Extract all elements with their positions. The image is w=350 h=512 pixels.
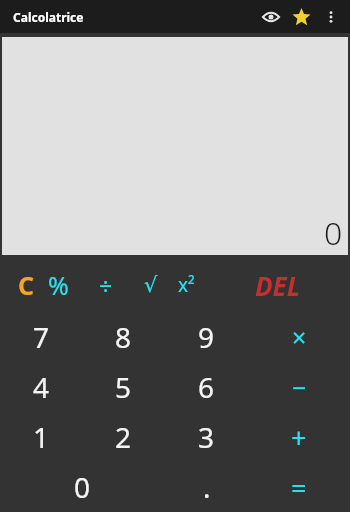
button[interactable]: x² xyxy=(166,259,206,311)
staticText: 9 xyxy=(198,318,215,356)
button[interactable]: . xyxy=(165,462,248,512)
staticText: 6 xyxy=(198,368,215,406)
staticText: × xyxy=(292,320,307,354)
button[interactable]: − xyxy=(248,362,350,412)
staticText: x² xyxy=(178,272,195,298)
button[interactable]: DEL xyxy=(238,259,318,311)
staticText: = xyxy=(291,469,307,506)
staticText: 3 xyxy=(198,418,215,456)
staticText: 4 xyxy=(33,368,50,406)
button[interactable]: √ xyxy=(133,259,169,311)
button[interactable]: 2 xyxy=(82,412,165,462)
staticText: C xyxy=(18,268,35,302)
button[interactable]: + xyxy=(248,412,350,462)
staticText: √ xyxy=(144,273,158,297)
staticText: 8 xyxy=(115,318,132,356)
button[interactable]: × xyxy=(248,311,350,362)
button[interactable]: 3 xyxy=(165,412,248,462)
staticText: 2 xyxy=(115,418,132,456)
staticText: 0 xyxy=(324,211,343,255)
staticText: 7 xyxy=(33,318,50,356)
button[interactable]: More options xyxy=(316,2,346,32)
staticText: . xyxy=(203,468,211,506)
staticText: + xyxy=(291,419,307,456)
button[interactable]: 5 xyxy=(82,362,165,412)
button[interactable]: 4 xyxy=(0,362,82,412)
staticText: Calcolatrice xyxy=(13,9,84,25)
staticText: 0 xyxy=(74,468,91,506)
staticText: 5 xyxy=(115,368,132,406)
button[interactable]: 8 xyxy=(82,311,165,362)
staticText: − xyxy=(292,370,307,404)
button[interactable]: ÷ xyxy=(87,259,125,311)
button[interactable]: 6 xyxy=(165,362,248,412)
button[interactable]: Result display xyxy=(2,37,348,255)
button[interactable]: 9 xyxy=(165,311,248,362)
staticText: 1 xyxy=(33,418,50,456)
button[interactable]: Preview xyxy=(256,2,286,32)
staticText: % xyxy=(48,268,69,302)
button[interactable]: C xyxy=(6,259,46,311)
button[interactable]: 1 xyxy=(0,412,82,462)
button[interactable]: 0 xyxy=(0,462,165,512)
button[interactable]: 7 xyxy=(0,311,82,362)
button[interactable]: Favorite xyxy=(286,2,316,32)
button[interactable]: % xyxy=(38,259,78,311)
button[interactable]: = xyxy=(248,462,350,512)
staticText: DEL xyxy=(255,268,301,303)
staticText: ÷ xyxy=(99,270,113,301)
